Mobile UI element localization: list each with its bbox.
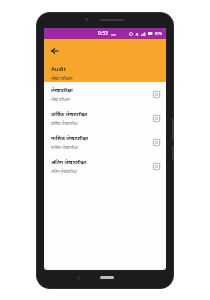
staticText: वार्षिक लेखापरीक्षा (51, 121, 78, 126)
staticText: Audit (51, 65, 66, 72)
staticText: लेखा परीक्षण (51, 75, 73, 81)
staticText: मासिक लेखापरीक्षा (51, 145, 79, 150)
staticText: वार्षिक लेखापरीक्षा (51, 111, 88, 118)
button[interactable]: Open audit form (151, 113, 161, 123)
staticText: am (111, 32, 117, 37)
staticText: लेखापरीक्षा (51, 87, 73, 94)
button[interactable]: Open audit form (151, 137, 161, 147)
staticText: लेखा परीक्षण (51, 97, 70, 102)
staticText: अंतिम लेखापरीक्षा (51, 169, 77, 174)
staticText: 87% (155, 31, 163, 36)
button[interactable]: Back (51, 45, 63, 57)
button[interactable]: Open audit form (151, 161, 161, 171)
button[interactable]: वार्षिक लेखापरीक्षा (44, 106, 166, 130)
button[interactable]: लेखापरीक्षा (44, 82, 166, 106)
button[interactable]: Open audit form (151, 89, 161, 99)
button[interactable]: अंतिम लेखापरीक्षा (44, 154, 166, 178)
staticText: 9:53 (98, 30, 108, 37)
staticText: मासिक लेखापरीक्षा (51, 135, 89, 142)
button[interactable]: मासिक लेखापरीक्षा (44, 130, 166, 154)
staticText: अंतिम लेखापरीक्षा (51, 159, 87, 166)
